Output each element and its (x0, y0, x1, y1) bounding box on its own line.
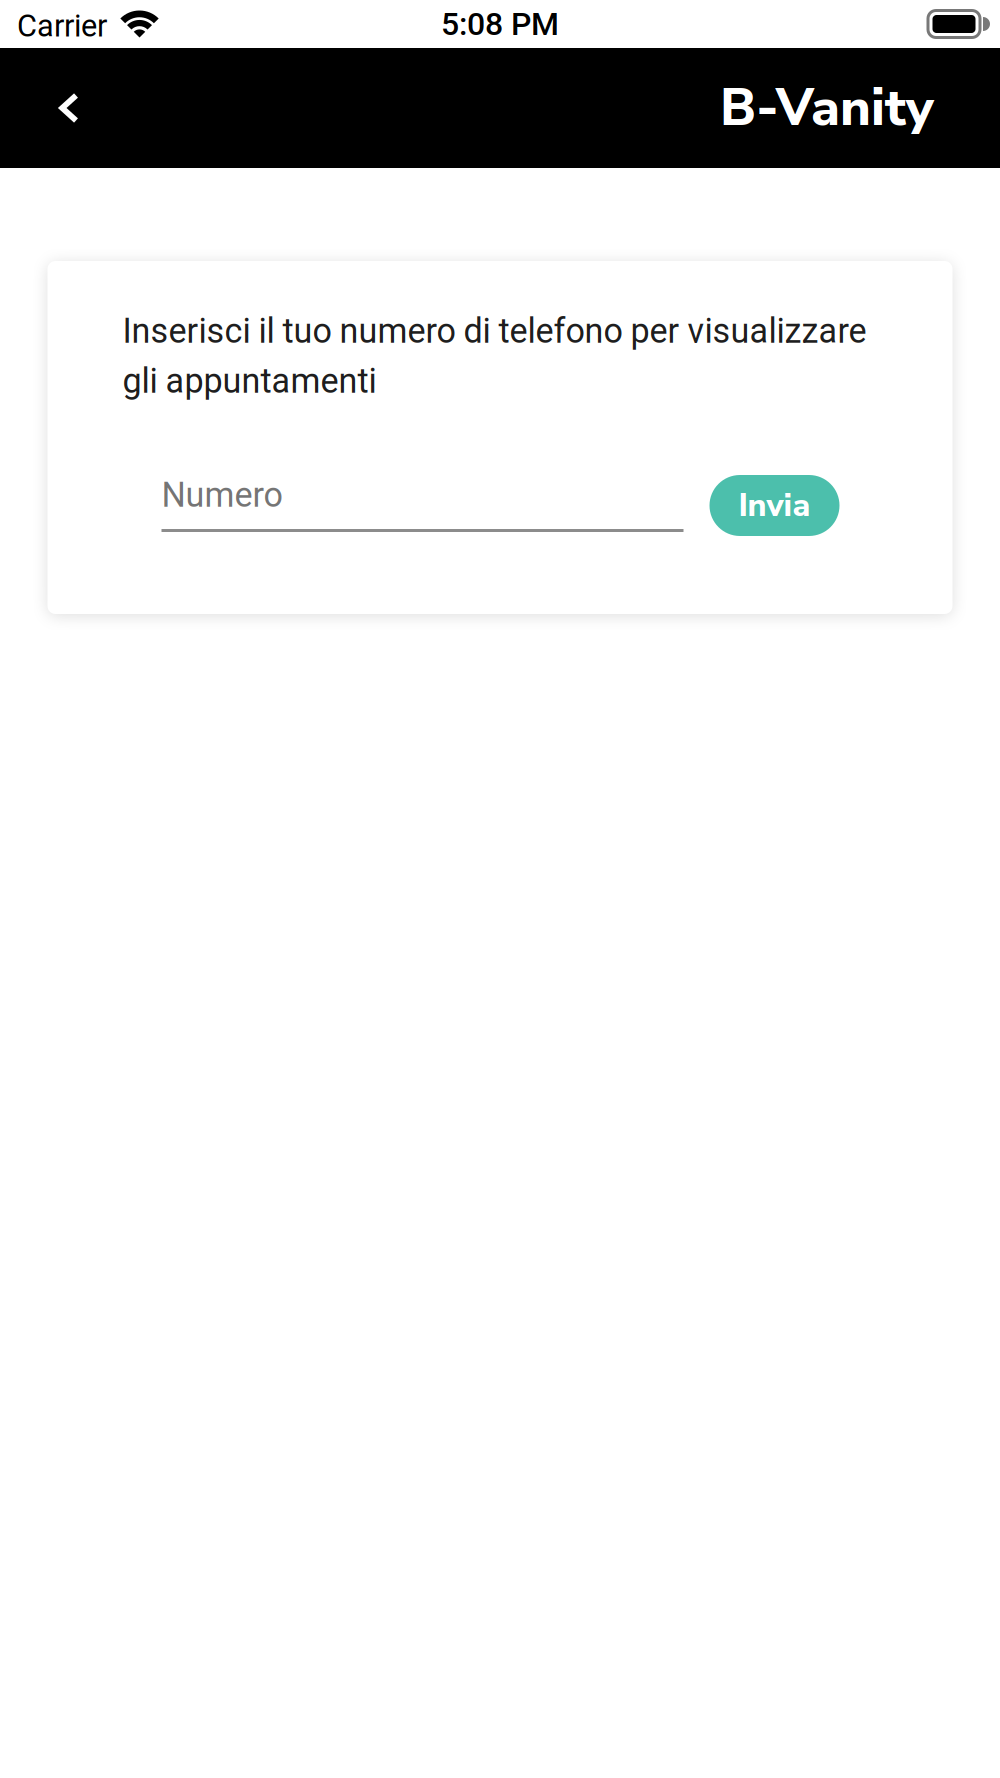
staticText: gli appuntamenti (122, 361, 376, 401)
button[interactable]: Invia (709, 475, 839, 536)
staticText: B-Vanity (720, 72, 934, 143)
staticText: 5:08 PM (441, 5, 559, 43)
button[interactable]: B-Vanity (720, 48, 934, 168)
staticText: Invia (738, 484, 810, 527)
staticText: Inserisci il tuo numero di telefono per … (122, 311, 866, 351)
staticText: Numero (161, 475, 282, 515)
button[interactable]: Back (30, 48, 108, 168)
staticText: Carrier (17, 8, 107, 44)
